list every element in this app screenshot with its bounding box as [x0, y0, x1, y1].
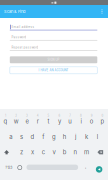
staticText: o: [90, 118, 94, 125]
staticText: SIGN UP: [47, 58, 59, 61]
button[interactable]: Emoji: [15, 160, 24, 175]
staticText: g: [52, 133, 56, 140]
button[interactable]: g: [49, 129, 59, 144]
staticText: 3: [26, 114, 28, 117]
button[interactable]: More options: [98, 5, 106, 18]
staticText: u: [68, 118, 72, 125]
button[interactable]: i: [76, 114, 86, 129]
staticText: Password: [11, 35, 26, 39]
button[interactable]: y: [54, 114, 65, 129]
staticText: x: [31, 149, 34, 156]
button[interactable]: d: [27, 129, 38, 144]
staticText: 7: [69, 114, 71, 117]
button[interactable]: SIGN UP: [10, 56, 97, 63]
button[interactable]: m: [81, 144, 92, 160]
staticText: Scan & Find: [4, 9, 25, 14]
staticText: j: [75, 133, 76, 140]
staticText: c: [42, 149, 45, 156]
staticText: ?123: [5, 165, 12, 170]
button[interactable]: u: [65, 114, 76, 129]
button[interactable]: t: [43, 114, 54, 129]
staticText: 1: [5, 114, 6, 117]
button[interactable]: r: [32, 114, 43, 129]
staticText: Repeat password: [11, 46, 38, 49]
button[interactable]: Repeat password: [10, 43, 97, 52]
staticText: e: [25, 118, 28, 125]
staticText: a: [9, 133, 12, 140]
button[interactable]: z: [16, 144, 27, 160]
staticText: n: [74, 149, 78, 156]
staticText: 0: [102, 114, 104, 117]
button[interactable]: I HAVE AN ACCOUNT: [10, 67, 97, 74]
button[interactable]: b: [59, 144, 70, 160]
staticText: 4: [37, 114, 39, 117]
staticText: .: [85, 163, 87, 170]
staticText: p: [101, 118, 105, 125]
staticText: r: [37, 118, 39, 125]
staticText: 2: [15, 114, 17, 117]
staticText: k: [85, 133, 88, 140]
staticText: 8: [80, 114, 82, 117]
staticText: b: [63, 149, 67, 156]
staticText: s: [20, 133, 23, 140]
button[interactable]: Password: [10, 33, 97, 42]
button[interactable]: j: [70, 129, 81, 144]
staticText: 9: [91, 114, 93, 117]
button[interactable]: c: [38, 144, 49, 160]
button[interactable]: .: [81, 159, 90, 174]
staticText: z: [20, 149, 23, 156]
button[interactable]: s: [16, 129, 27, 144]
staticText: 5: [48, 114, 50, 117]
staticText: i: [80, 118, 81, 125]
button[interactable]: Enter: [96, 166, 102, 173]
staticText: q: [3, 118, 7, 125]
staticText: I HAVE AN ACCOUNT: [38, 69, 68, 72]
staticText: t: [48, 118, 50, 125]
button[interactable]: Space: [26, 165, 78, 170]
button[interactable]: x: [27, 144, 38, 160]
button[interactable]: w: [11, 114, 22, 129]
button[interactable]: a: [5, 129, 16, 144]
button[interactable]: ?123: [2, 160, 16, 175]
button[interactable]: o: [86, 114, 97, 129]
button[interactable]: p: [97, 114, 108, 129]
button[interactable]: n: [70, 144, 81, 160]
button[interactable]: l: [92, 129, 103, 144]
button[interactable]: h: [59, 129, 70, 144]
button[interactable]: f: [38, 129, 49, 144]
staticText: v: [52, 149, 55, 156]
staticText: w: [14, 118, 19, 125]
staticText: d: [30, 133, 34, 140]
button[interactable]: Email address: [10, 22, 97, 31]
staticText: l: [97, 133, 98, 140]
staticText: f: [42, 133, 44, 140]
staticText: m: [84, 149, 89, 156]
button[interactable]: q: [0, 114, 11, 129]
staticText: 6: [58, 114, 60, 117]
staticText: y: [58, 118, 61, 125]
button[interactable]: k: [81, 129, 92, 144]
staticText: h: [63, 133, 67, 140]
button[interactable]: Shift: [1, 144, 13, 160]
button[interactable]: Backspace: [94, 144, 106, 160]
staticText: Email address: [11, 25, 34, 29]
button[interactable]: e: [22, 114, 32, 129]
button[interactable]: v: [49, 144, 59, 160]
